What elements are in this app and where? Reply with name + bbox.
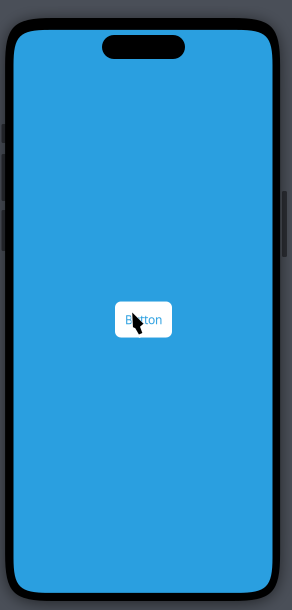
staticText: Button xyxy=(125,311,162,327)
button[interactable]: Button xyxy=(115,301,172,337)
